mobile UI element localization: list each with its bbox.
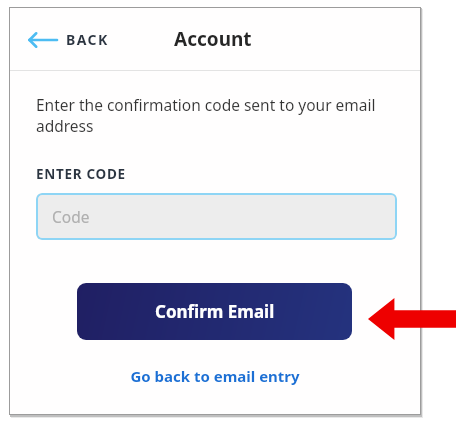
staticText: Confirm Email [155,300,275,323]
staticText: ENTER CODE [36,165,126,183]
other: Annotation arrow pointing to Confirm Ema… [368,298,456,340]
button[interactable]: Go back to email entry [126,364,304,388]
staticText: Enter the confirmation code sent to your… [36,94,392,137]
button[interactable]: Code [36,193,397,240]
button[interactable]: BACK [20,24,117,55]
button[interactable]: Confirm Email [77,283,352,340]
staticText: Code [52,206,90,227]
staticText: Account [174,26,252,52]
staticText: BACK [66,30,109,49]
